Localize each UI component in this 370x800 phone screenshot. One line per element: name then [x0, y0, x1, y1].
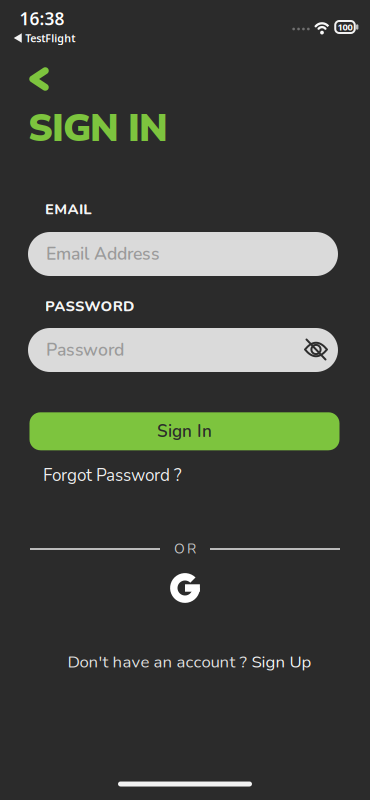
staticText: Sign In [157, 420, 212, 443]
button[interactable]: Sign In [29, 412, 339, 450]
button[interactable]: Email Address [28, 232, 338, 276]
button[interactable]: TestFlight [14, 31, 75, 45]
staticText: EMAIL [45, 199, 91, 219]
button[interactable]: Password [28, 328, 338, 372]
staticText: Don't have an account ? [67, 650, 246, 673]
staticText: Email Address [46, 242, 160, 266]
staticText: 100 [337, 21, 352, 33]
staticText: SIGN IN [28, 103, 168, 154]
button[interactable]: Sign Up [251, 650, 311, 673]
button[interactable]: Show password [303, 337, 329, 361]
button[interactable]: Forgot Password ? [43, 464, 182, 487]
staticText: Password [46, 338, 124, 362]
button[interactable]: Back [29, 67, 48, 90]
staticText: TestFlight [25, 31, 75, 45]
staticText: Forgot Password ? [43, 464, 182, 487]
staticText: OR [174, 539, 196, 559]
staticText: 16:38 [19, 7, 64, 30]
button[interactable]: Sign in with Google [168, 571, 202, 605]
staticText: Sign Up [251, 650, 311, 673]
staticText: PASSWORD [45, 296, 134, 316]
